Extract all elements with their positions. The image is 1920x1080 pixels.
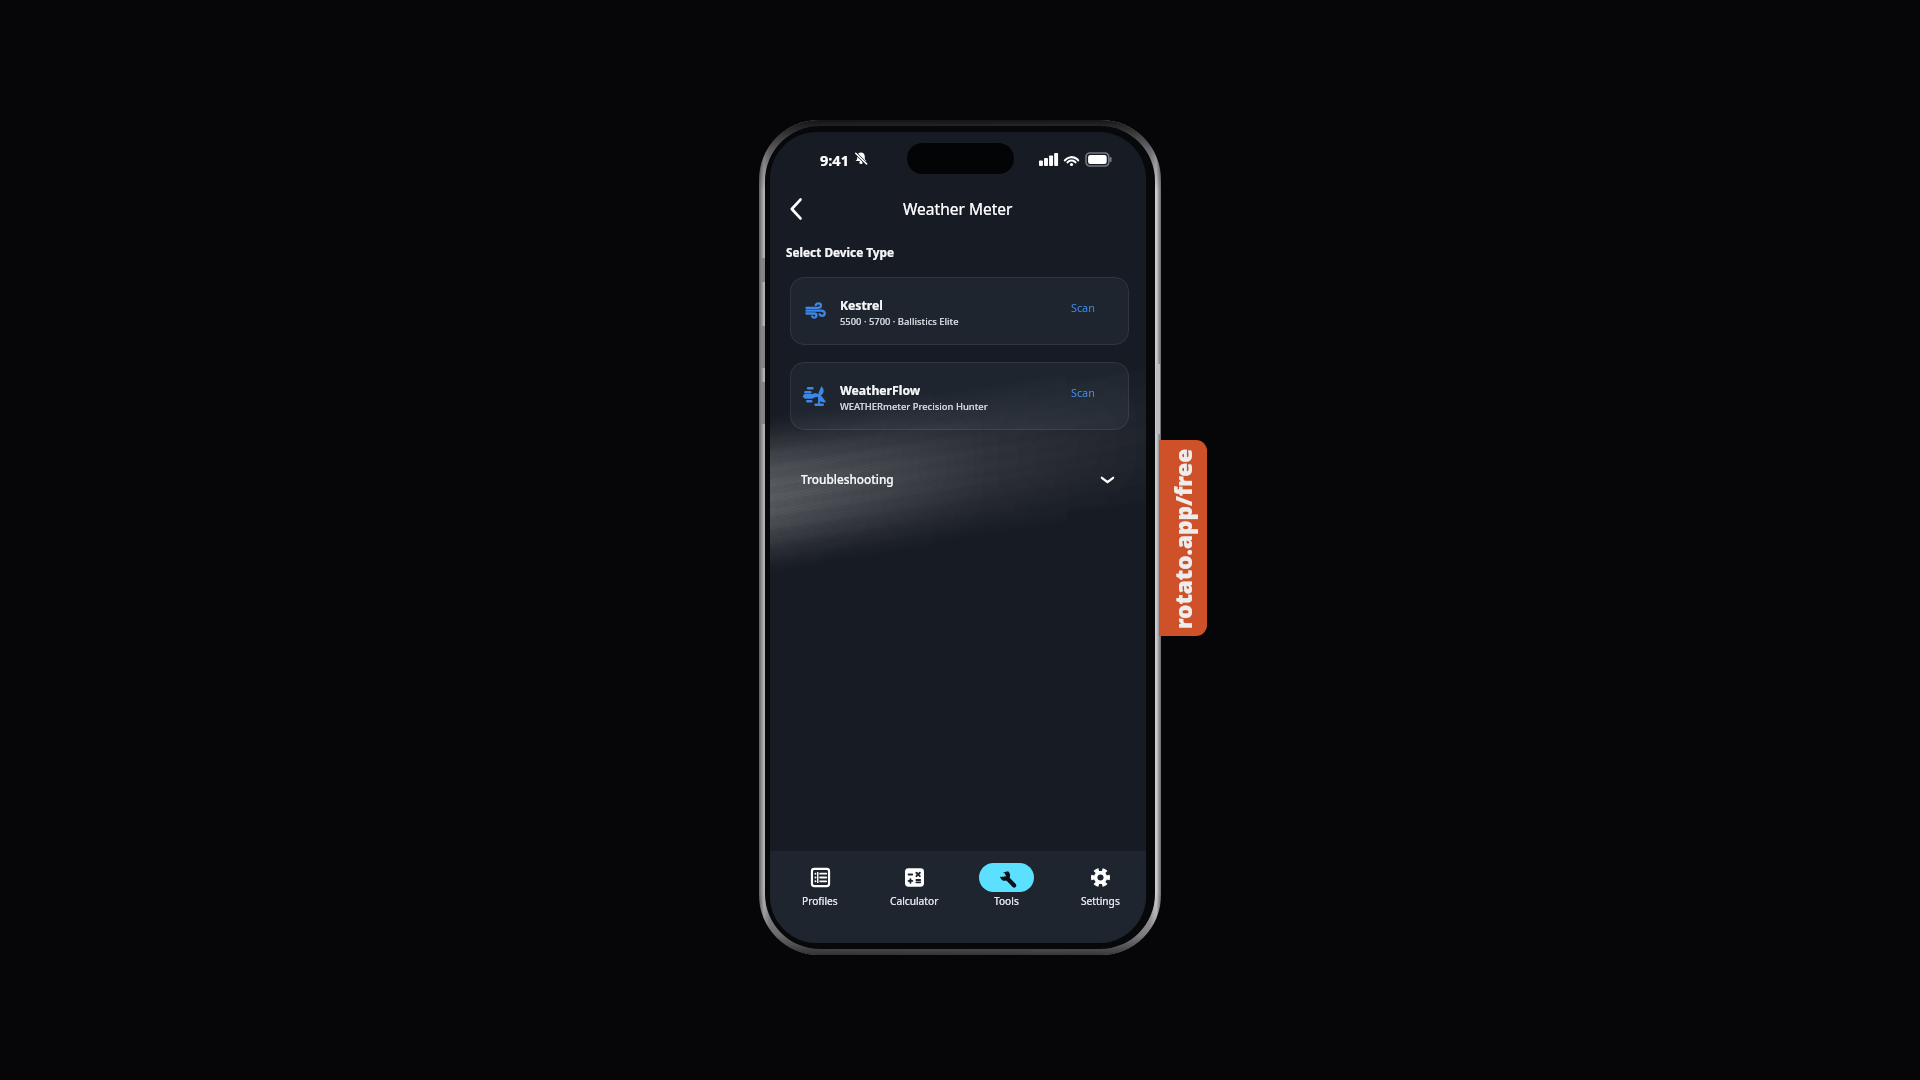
staticText: Tools [994,894,1019,908]
button[interactable]: Scan [1063,378,1103,407]
staticText: Settings [1081,894,1120,908]
button[interactable]: Back [776,189,816,229]
staticText: Profiles [802,894,838,908]
button[interactable]: Calculator [874,851,954,943]
staticText: rotato.app/free [1168,448,1199,629]
button[interactable]: Scan [1063,293,1103,322]
staticText: Kestrel [840,297,883,314]
staticText: Calculator [890,894,939,908]
staticText: Troubleshooting [801,471,894,487]
staticText: WeatherFlow [840,382,921,399]
staticText: Scan [1071,385,1095,400]
staticText: 9:41 [820,150,849,170]
button[interactable]: WeatherFlow [790,362,1129,430]
button[interactable]: Troubleshooting [770,457,1146,501]
button[interactable]: Settings [1060,851,1140,943]
button[interactable]: Profiles [780,851,860,943]
button[interactable]: Tools [966,851,1046,943]
staticText: 5500 · 5700 · Ballistics Elite [840,315,959,328]
staticText: Select Device Type [786,244,895,260]
staticText: WEATHERmeter Precision Hunter [840,400,988,413]
staticText: Weather Meter [903,198,1013,219]
staticText: Scan [1071,300,1095,315]
button[interactable]: Kestrel [790,277,1129,345]
